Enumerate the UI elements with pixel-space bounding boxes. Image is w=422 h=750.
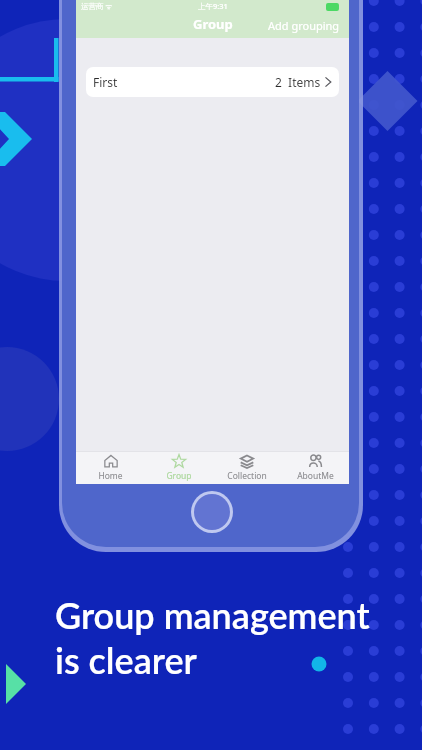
button[interactable]: AboutMe [281,452,349,484]
staticText: Group management [55,593,370,636]
button[interactable]: Add grouping [268,18,340,33]
button[interactable]: Home button [191,491,233,533]
staticText: Home [98,470,123,482]
staticText: is clearer [55,638,197,681]
staticText: 上午9:31 [198,1,228,11]
staticText: First [93,74,118,90]
button[interactable]: First [86,67,339,97]
button[interactable]: Collection [213,452,281,484]
staticText: 2 Items [275,74,321,90]
staticText: Collection [227,470,267,482]
staticText: 运营商 ᯤ [81,1,113,11]
staticText: AboutMe [297,470,334,482]
button[interactable]: Group [145,452,213,484]
button[interactable]: Home [76,452,145,484]
staticText: Group [166,470,192,482]
staticText: Group [193,15,233,33]
